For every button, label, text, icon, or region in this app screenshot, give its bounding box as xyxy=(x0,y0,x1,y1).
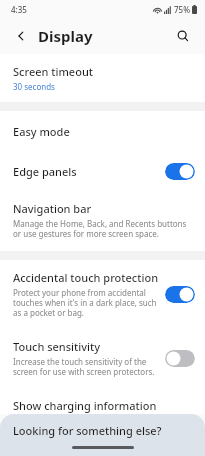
staticText: Looking for something else? xyxy=(13,423,162,438)
staticText: Manage the Home, Back, and Recents butto… xyxy=(13,218,189,239)
staticText: Show charging information xyxy=(13,398,157,413)
button[interactable]: Back xyxy=(10,25,32,47)
staticText: Display xyxy=(38,26,93,46)
button[interactable]: Toggle on xyxy=(165,163,195,180)
button[interactable]: Accidental touch protection xyxy=(0,260,205,329)
button[interactable]: Easy mode xyxy=(0,111,205,152)
button[interactable]: Search xyxy=(171,24,195,48)
button[interactable]: Touch sensitivity xyxy=(0,329,205,388)
staticText: 30 seconds xyxy=(13,81,55,92)
staticText: Edge panels xyxy=(13,164,77,179)
staticText: Screen timeout xyxy=(13,64,94,79)
staticText: Increase the touch sensitivity of the sc… xyxy=(13,356,159,377)
button[interactable]: Screen timeout xyxy=(0,54,205,102)
staticText: Accidental touch protection xyxy=(13,270,159,285)
button[interactable]: Toggle off xyxy=(165,350,195,367)
button[interactable]: Edge panels xyxy=(0,152,205,191)
staticText: 4:35 xyxy=(11,4,27,15)
staticText: Navigation bar xyxy=(13,201,92,216)
staticText: Easy mode xyxy=(13,124,70,139)
staticText: Touch sensitivity xyxy=(13,339,101,354)
button[interactable]: Looking for something else? xyxy=(0,414,205,446)
staticText: Protect your phone from accidental touch… xyxy=(13,287,159,318)
button[interactable]: Navigation bar xyxy=(0,191,205,251)
button[interactable]: Show charging information xyxy=(0,388,205,414)
button[interactable]: Toggle on xyxy=(165,286,195,303)
staticText: 75% xyxy=(174,4,190,15)
